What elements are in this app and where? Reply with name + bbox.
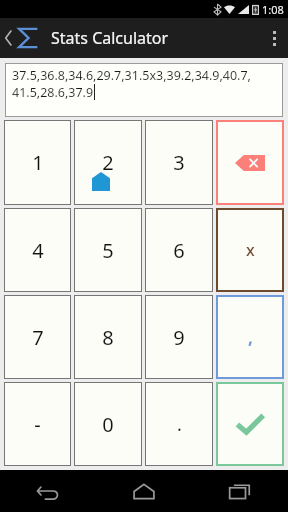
staticText: 4 [32,237,44,264]
button[interactable]: Comma [216,295,284,379]
button[interactable]: Recent apps [192,470,288,512]
staticText: Stats Calculator [51,27,169,49]
button[interactable]: 0 [74,382,142,466]
button[interactable]: 9 [145,295,213,379]
button[interactable]: 3 [145,120,213,205]
staticText: 6 [173,237,185,264]
staticText: 37.5,36.8,34.6,29.7,31.5x3,39.2,34.9,40.… [12,67,251,84]
staticText: , [248,326,253,349]
button[interactable]: 5 [74,208,142,292]
button[interactable]: 6 [145,208,213,292]
button[interactable]: 4 [4,208,71,292]
staticText: - [34,411,41,438]
button[interactable]: Back [0,470,96,512]
staticText: 9 [173,324,185,351]
staticText: 3 [173,149,185,176]
staticText: . [177,412,182,437]
staticText: 41.5,28.6,37.9 [12,84,94,101]
staticText: 0 [102,411,114,438]
staticText: x [246,239,255,261]
button[interactable]: 2 [74,120,142,205]
staticText: 7 [32,324,44,351]
button[interactable]: Done [216,382,284,466]
staticText: 1:08 [262,2,284,17]
staticText: 5 [102,237,114,264]
staticText: 1 [32,149,44,176]
button[interactable]: More options [260,18,288,58]
button[interactable]: 1 [4,120,71,205]
button[interactable]: 8 [74,295,142,379]
button[interactable]: Home [96,470,192,512]
button[interactable]: 37.5,36.8,34.6,29.7,31.5x3,39.2,34.9,40.… [5,63,283,117]
button[interactable]: - [4,382,71,466]
button[interactable]: Backspace [216,120,284,205]
staticText: 8 [102,324,114,351]
button[interactable]: Navigate up [0,18,43,58]
button[interactable]: . [145,382,213,466]
button[interactable]: Multiply [216,208,284,292]
staticText: 2 [102,149,114,176]
button[interactable]: 7 [4,295,71,379]
